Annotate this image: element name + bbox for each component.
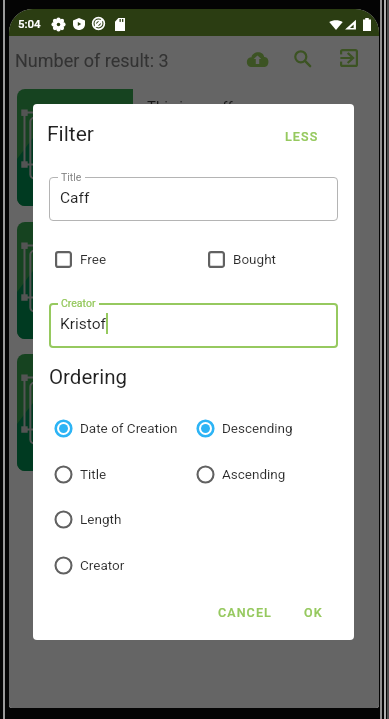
staticText: Date of Creation — [80, 420, 178, 436]
button[interactable]: Upload — [237, 39, 277, 79]
staticText: Descending — [222, 420, 293, 436]
staticText: Creator — [61, 297, 96, 309]
button[interactable]: Date of Creation — [50, 407, 195, 449]
button[interactable]: Free — [55, 239, 195, 279]
staticText: Ordering — [49, 365, 128, 389]
button[interactable]: Descending — [192, 407, 337, 449]
staticText: Free — [80, 251, 107, 267]
button[interactable]: LESS — [271, 119, 333, 153]
button[interactable] — [49, 303, 338, 348]
button[interactable]: Creator — [50, 544, 195, 586]
staticText: This is a caff... — [147, 98, 245, 116]
staticText: CANCEL — [218, 605, 272, 620]
staticText: Ascending — [222, 466, 286, 482]
button[interactable]: Length — [50, 498, 195, 540]
staticText: LESS — [285, 129, 319, 144]
button[interactable]: Ascending — [192, 453, 337, 495]
button[interactable]: Search — [282, 38, 322, 78]
button[interactable]: This is a caff... — [17, 89, 371, 206]
staticText: Creator — [80, 557, 125, 573]
staticText: Number of result: 3 — [15, 50, 169, 71]
button[interactable]: This is a caff... — [17, 222, 371, 339]
staticText: Caff — [60, 189, 90, 207]
button[interactable]: CANCEL — [211, 594, 279, 630]
staticText: Title — [80, 466, 107, 482]
button[interactable]: This is a caff... — [17, 354, 371, 471]
button[interactable]: Login — [329, 38, 369, 78]
button[interactable]: Title — [50, 453, 195, 495]
staticText: Bought — [233, 251, 276, 267]
staticText: Length — [80, 511, 122, 527]
button[interactable] — [49, 177, 338, 221]
staticText: Filter — [47, 122, 94, 147]
button[interactable]: OK — [291, 594, 335, 630]
staticText: Title — [61, 171, 82, 183]
staticText: 5:04 — [18, 17, 41, 30]
staticText: OK — [304, 605, 323, 620]
staticText: Kristof — [60, 315, 106, 333]
button[interactable]: Bought — [208, 239, 348, 279]
